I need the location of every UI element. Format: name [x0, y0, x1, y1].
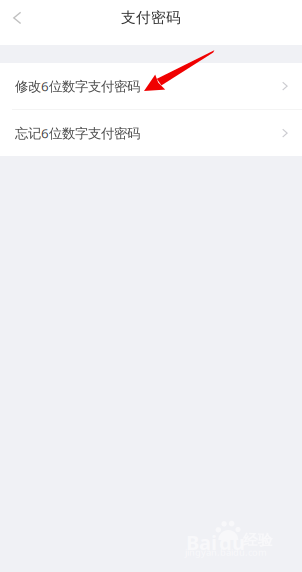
staticText: 经验	[243, 531, 273, 549]
button[interactable]: 修改6位数字支付密码	[0, 63, 302, 109]
staticText: Bai	[186, 529, 217, 556]
button[interactable]: 忘记6位数字支付密码	[0, 110, 302, 156]
staticText: 忘记6位数字支付密码	[15, 124, 140, 142]
staticText: 修改6位数字支付密码	[15, 77, 140, 95]
button[interactable]: Back	[0, 0, 46, 35]
staticText: du	[219, 529, 245, 556]
staticText: 支付密码	[121, 8, 181, 26]
